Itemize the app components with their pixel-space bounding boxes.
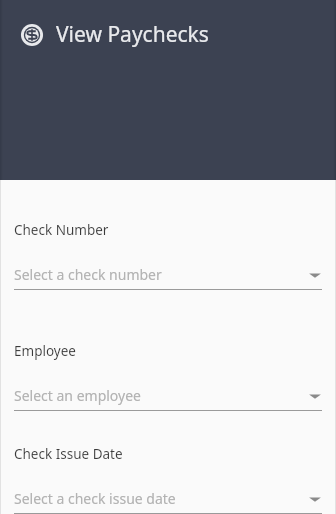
staticText: View Paychecks [56,20,209,49]
staticText: Select a check issue date [14,489,308,508]
staticText: Employee [14,342,76,360]
button[interactable]: Employee [14,342,322,411]
other: Open dropdown [308,389,322,403]
staticText: Check Issue Date [14,445,123,463]
staticText: Select an employee [14,386,308,405]
button[interactable]: Check Issue Date [14,445,322,514]
other: Open dropdown [308,492,322,506]
other: Open dropdown [308,268,322,282]
button[interactable]: Check Number [14,221,322,290]
other: Paycheck [20,23,44,47]
button[interactable]: Paycheck [20,20,209,49]
staticText: Select a check number [14,265,308,284]
staticText: Check Number [14,221,109,239]
